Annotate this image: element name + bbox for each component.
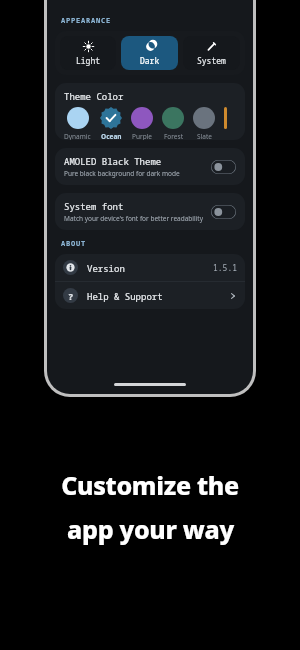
- staticText: Slate: [197, 132, 212, 140]
- staticText: Theme Color: [64, 90, 124, 102]
- staticText: 1.5.1: [213, 262, 237, 273]
- staticText: Purple: [132, 132, 152, 140]
- staticText: Version: [87, 262, 213, 274]
- staticText: Pure black background for dark mode: [64, 169, 180, 178]
- button[interactable]: AMOLED Black Theme: [55, 148, 245, 185]
- button[interactable]: ?: [55, 282, 245, 309]
- button[interactable]: Slate: [193, 107, 215, 140]
- staticText: Customize the: [61, 468, 239, 502]
- button[interactable]: System: [183, 36, 240, 70]
- button[interactable]: Light: [60, 36, 116, 70]
- staticText: System font: [64, 200, 124, 212]
- staticText: Match your device's font for better read…: [64, 214, 204, 223]
- staticText: app your way: [67, 512, 234, 546]
- button[interactable]: Version: [55, 254, 245, 281]
- button[interactable]: Forest: [162, 107, 184, 140]
- staticText: ?: [68, 290, 74, 302]
- staticText: Forest: [164, 132, 183, 140]
- staticText: Ocean: [101, 132, 122, 140]
- button[interactable]: Toggle: [211, 160, 236, 174]
- button[interactable]: Dynamic: [64, 107, 91, 140]
- staticText: Dark: [140, 55, 160, 66]
- staticText: AMOLED Black Theme: [64, 155, 162, 167]
- staticText: Help & Support: [87, 290, 229, 302]
- staticText: Light: [76, 55, 100, 66]
- staticText: APPEARANCE: [61, 16, 111, 26]
- staticText: System: [197, 55, 226, 66]
- button[interactable]: Ocean: [100, 107, 122, 140]
- staticText: ABOUT: [61, 239, 86, 249]
- staticText: Dynamic: [64, 132, 91, 140]
- button[interactable]: Toggle: [211, 205, 236, 219]
- button[interactable]: System font: [55, 193, 245, 230]
- button[interactable]: Purple: [131, 107, 153, 140]
- button[interactable]: Dark: [121, 36, 178, 70]
